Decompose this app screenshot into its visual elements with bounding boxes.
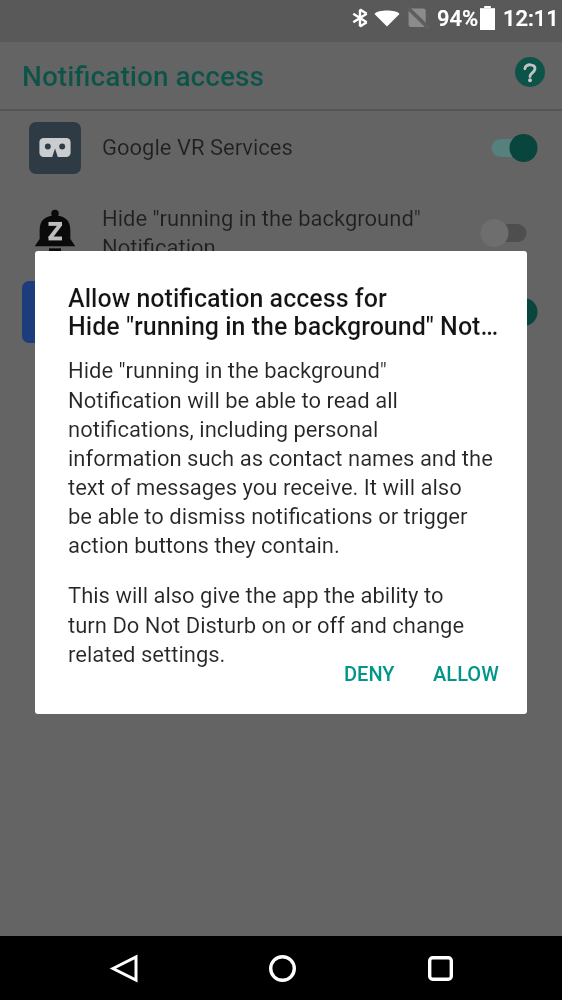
- staticText: Other notification listener: [95, 299, 468, 325]
- button[interactable]: Hide "running in the background" Notific…: [0, 185, 562, 281]
- button[interactable]: ALLOW: [419, 654, 513, 693]
- staticText: 12:11: [503, 6, 559, 32]
- button[interactable]: Help: [508, 50, 552, 94]
- staticText: This will also give the app the ability …: [68, 583, 465, 668]
- button[interactable]: Other notification listener: [0, 281, 562, 343]
- staticText: Notification access: [22, 60, 264, 93]
- staticText: DENY: [344, 662, 395, 685]
- staticText: 94%: [437, 6, 479, 32]
- button[interactable]: Recent apps: [410, 938, 470, 998]
- staticText: Allow notification access for Hide "runn…: [68, 284, 499, 341]
- staticText: Hide "running in the background" Notific…: [102, 206, 468, 260]
- staticText: ALLOW: [433, 662, 499, 685]
- staticText: Google VR Services: [102, 135, 468, 161]
- button[interactable]: Home: [252, 938, 312, 998]
- button[interactable]: Google VR Services: [0, 111, 562, 185]
- staticText: Hide "running in the background" Notific…: [68, 358, 493, 559]
- button[interactable]: DENY: [330, 654, 409, 693]
- button[interactable]: Back: [94, 938, 154, 998]
